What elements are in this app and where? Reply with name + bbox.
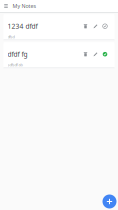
button[interactable]: Mark as done [100, 21, 109, 31]
button[interactable]: Create note [102, 194, 116, 208]
staticText: dfsd [7, 34, 14, 39]
button[interactable]: Edit note [90, 21, 100, 31]
button[interactable]: Edit note [90, 49, 100, 59]
button[interactable]: Open navigation menu [0, 0, 12, 12]
staticText: dfdf fg [7, 50, 27, 59]
button[interactable]: Delete note [80, 49, 90, 59]
staticText: 1234 dfdf [7, 22, 37, 31]
staticText: sdfsdf ab [7, 62, 22, 67]
button[interactable]: Delete note [80, 21, 90, 31]
staticText: My Notes [12, 2, 36, 10]
button[interactable]: Mark as not done [100, 49, 109, 59]
